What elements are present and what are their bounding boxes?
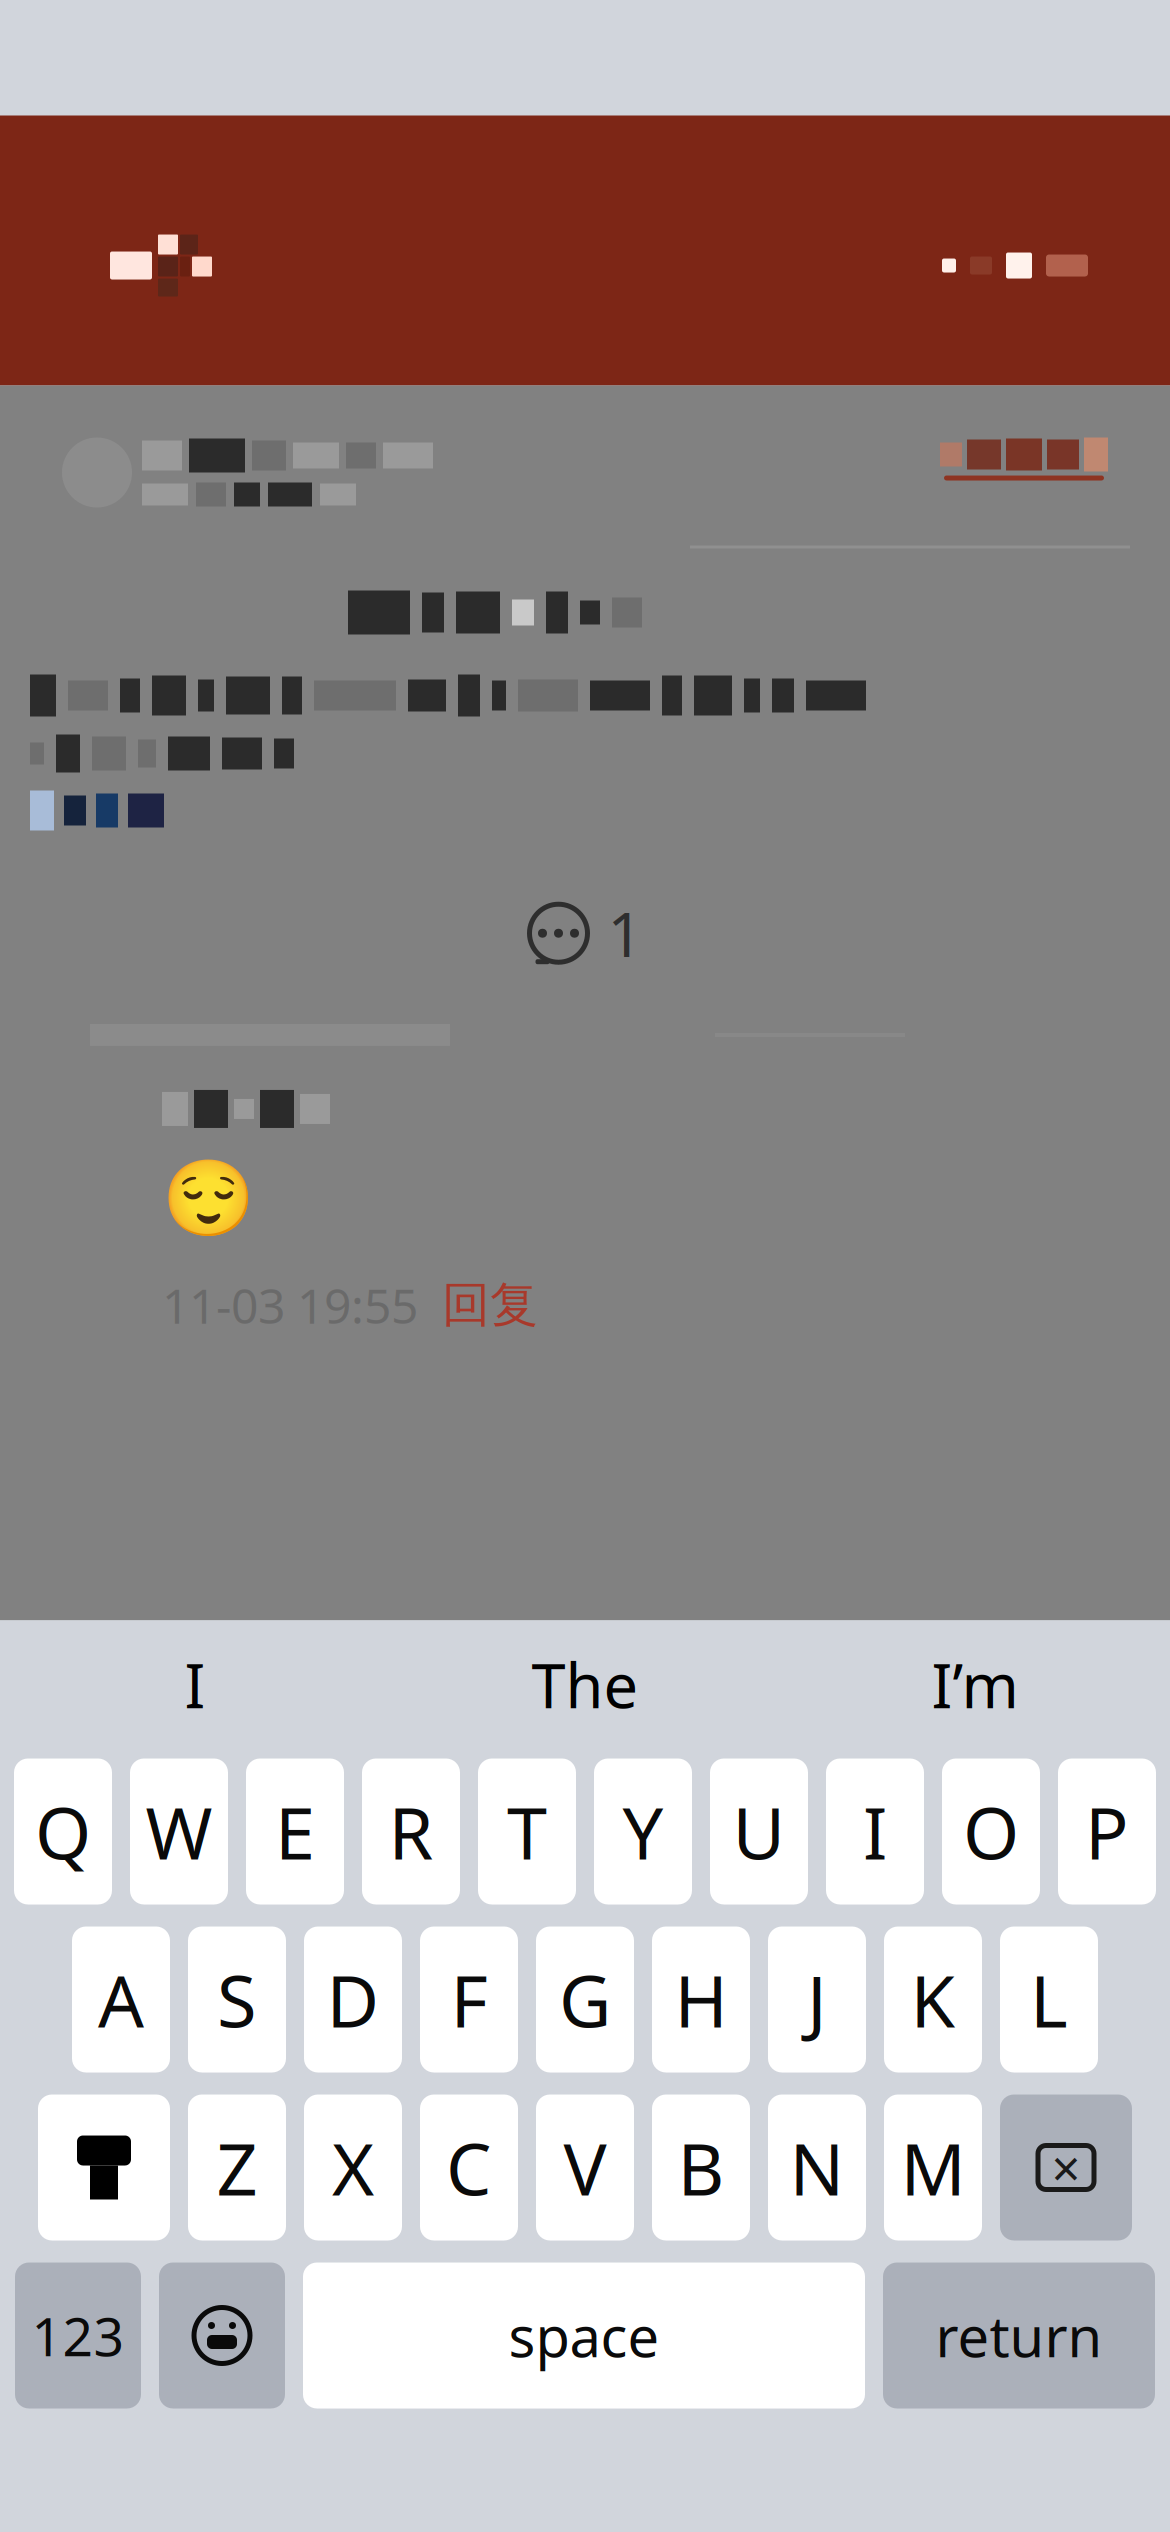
button[interactable]: 123 — [15, 2262, 141, 2408]
staticText: I — [863, 1784, 887, 1879]
button[interactable]: W — [130, 1758, 228, 1904]
staticText: 11-03 19:55 — [162, 1273, 418, 1337]
staticText: Z — [216, 2120, 257, 2215]
button[interactable]: I — [0, 1620, 390, 1748]
staticText: 1 — [607, 892, 642, 974]
button[interactable]: 回复 — [442, 1276, 538, 1335]
staticText: C — [446, 2120, 492, 2215]
staticText: O — [963, 1784, 1019, 1879]
staticText: space — [508, 2298, 659, 2373]
button[interactable]: F — [420, 1926, 518, 2072]
staticText: 123 — [31, 2300, 124, 2371]
staticText: 回复 — [442, 1276, 538, 1335]
staticText: return — [935, 2298, 1102, 2373]
button[interactable]: I’m — [780, 1620, 1170, 1748]
staticText: B — [677, 2120, 724, 2215]
button[interactable]: E — [246, 1758, 344, 1904]
staticText: H — [674, 1952, 727, 2047]
button[interactable]: N — [768, 2094, 866, 2240]
button[interactable]: P — [1058, 1758, 1156, 1904]
staticText: 😌 — [162, 1156, 255, 1241]
button[interactable]: Q — [14, 1758, 112, 1904]
button[interactable]: V — [536, 2094, 634, 2240]
staticText: X — [332, 2120, 374, 2215]
staticText: T — [507, 1784, 547, 1879]
button[interactable]: K — [884, 1926, 982, 2072]
button[interactable]: A — [72, 1926, 170, 2072]
button[interactable]: Z — [188, 2094, 286, 2240]
staticText: K — [910, 1952, 955, 2047]
staticText: D — [326, 1952, 379, 2047]
button[interactable]: B — [652, 2094, 750, 2240]
button[interactable]: space — [303, 2262, 865, 2408]
staticText: E — [275, 1784, 315, 1879]
button[interactable]: D — [304, 1926, 402, 2072]
staticText: M — [900, 2120, 965, 2215]
staticText: I — [184, 1644, 205, 1725]
button[interactable]: Delete — [1000, 2094, 1132, 2240]
staticText: J — [807, 1952, 827, 2047]
button[interactable]: L — [1000, 1926, 1098, 2072]
button[interactable]: H — [652, 1926, 750, 2072]
staticText: W — [145, 1784, 212, 1879]
staticText: Q — [35, 1784, 91, 1879]
staticText: I’m — [931, 1644, 1018, 1725]
button[interactable]: T — [478, 1758, 576, 1904]
button[interactable]: The — [390, 1620, 780, 1748]
button[interactable]: Comments — [527, 892, 642, 974]
staticText: R — [388, 1784, 433, 1879]
staticText: G — [559, 1952, 611, 2047]
button[interactable]: S — [188, 1926, 286, 2072]
staticText: V — [563, 2120, 606, 2215]
button[interactable]: I — [826, 1758, 924, 1904]
button[interactable]: R — [362, 1758, 460, 1904]
button[interactable]: Shift — [38, 2094, 170, 2240]
staticText: S — [217, 1952, 257, 2047]
button[interactable]: Y — [594, 1758, 692, 1904]
button[interactable]: Follow — [940, 437, 1108, 480]
staticText: U — [732, 1784, 785, 1879]
button[interactable]: M — [884, 2094, 982, 2240]
staticText: P — [1085, 1784, 1129, 1879]
staticText: The — [531, 1644, 638, 1725]
staticText: L — [1030, 1952, 1068, 2047]
button[interactable]: O — [942, 1758, 1040, 1904]
staticText: Y — [622, 1784, 663, 1879]
button[interactable]: J — [768, 1926, 866, 2072]
button[interactable]: C — [420, 2094, 518, 2240]
staticText: × — [1051, 2134, 1080, 2201]
button[interactable]: return — [883, 2262, 1155, 2408]
staticText: A — [98, 1952, 144, 2047]
button[interactable]: X — [304, 2094, 402, 2240]
staticText: F — [450, 1952, 487, 2047]
button[interactable]: U — [710, 1758, 808, 1904]
staticText: N — [789, 2120, 844, 2215]
button[interactable]: G — [536, 1926, 634, 2072]
button[interactable]: Emoji — [159, 2262, 285, 2408]
